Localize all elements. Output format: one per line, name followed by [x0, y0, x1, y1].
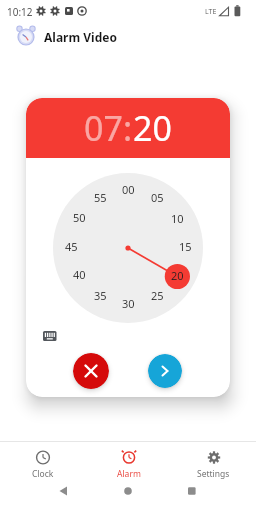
staticText: Alarm	[117, 468, 141, 480]
button[interactable]: Clock	[0, 442, 86, 480]
staticText: 00	[122, 182, 135, 196]
staticText: 15	[179, 239, 192, 253]
staticText: 05	[151, 190, 164, 204]
button[interactable]	[43, 331, 57, 342]
staticText: :	[123, 105, 133, 151]
staticText: 20	[133, 105, 172, 151]
button[interactable]: Alarm	[86, 442, 171, 480]
button[interactable]	[148, 354, 182, 388]
staticText: 30	[122, 296, 135, 310]
staticText: 50	[73, 210, 86, 224]
button[interactable]: Settings	[171, 442, 256, 480]
staticText: 25	[151, 288, 164, 302]
staticText: 35	[94, 288, 107, 302]
staticText: 40	[73, 267, 86, 281]
staticText: 20	[171, 268, 184, 282]
staticText: 10	[171, 211, 184, 225]
staticText: Settings	[197, 468, 230, 480]
staticText: 07	[84, 105, 123, 151]
staticText: 10:12	[7, 5, 33, 19]
staticText: 45	[65, 239, 78, 253]
staticText: Clock	[32, 468, 54, 480]
staticText: 55	[94, 190, 107, 204]
staticText: LTE	[205, 7, 217, 17]
staticText: Alarm Video	[44, 29, 117, 45]
button[interactable]	[73, 353, 109, 389]
